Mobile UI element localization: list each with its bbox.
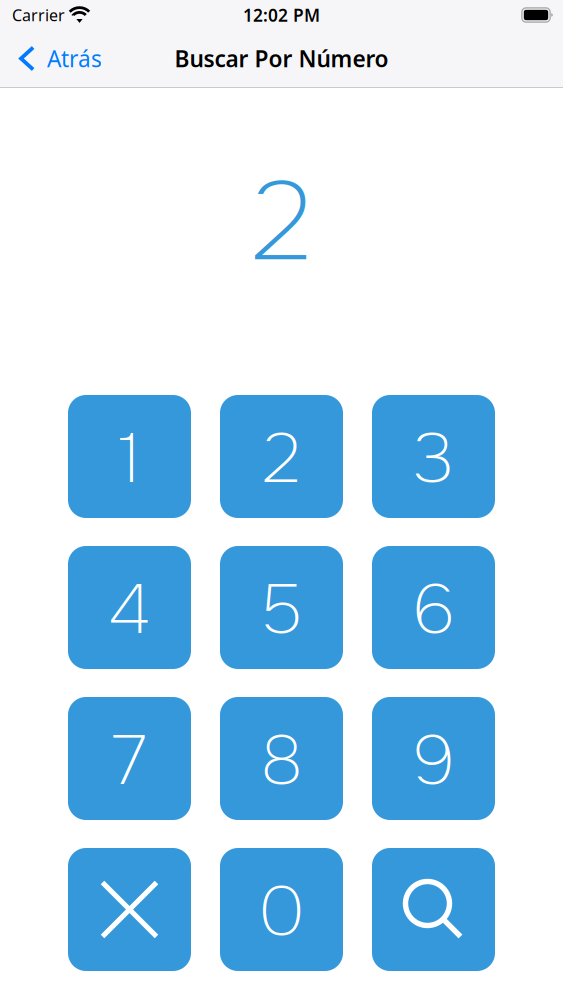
staticText: Buscar Por Número [174,43,388,73]
staticText: 9 [412,717,455,805]
button[interactable]: 2 [220,395,343,518]
staticText: Carrier [12,4,65,26]
button[interactable]: Atrás [0,30,114,86]
staticText: 7 [112,717,147,805]
button[interactable]: 5 [220,546,343,669]
staticText: 2 [262,415,301,503]
staticText: 4 [108,566,151,654]
button[interactable]: 6 [372,546,495,669]
button[interactable]: Borrar [68,848,191,971]
staticText: Atrás [47,43,102,73]
button[interactable]: 8 [220,697,343,820]
button[interactable]: 0 [220,848,343,971]
staticText: 3 [413,415,454,503]
button[interactable]: 9 [372,697,495,820]
staticText: 8 [260,717,302,805]
button[interactable]: 7 [68,697,191,820]
staticText: 12:02 PM [243,3,320,26]
staticText: 0 [258,868,304,956]
staticText: 1 [118,415,141,503]
staticText: 6 [412,566,455,654]
button[interactable]: 1 [68,395,191,518]
staticText: 5 [260,566,302,654]
button[interactable]: Buscar [372,848,495,971]
staticText: 2 [251,153,312,293]
button[interactable]: 4 [68,546,191,669]
button[interactable]: 3 [372,395,495,518]
